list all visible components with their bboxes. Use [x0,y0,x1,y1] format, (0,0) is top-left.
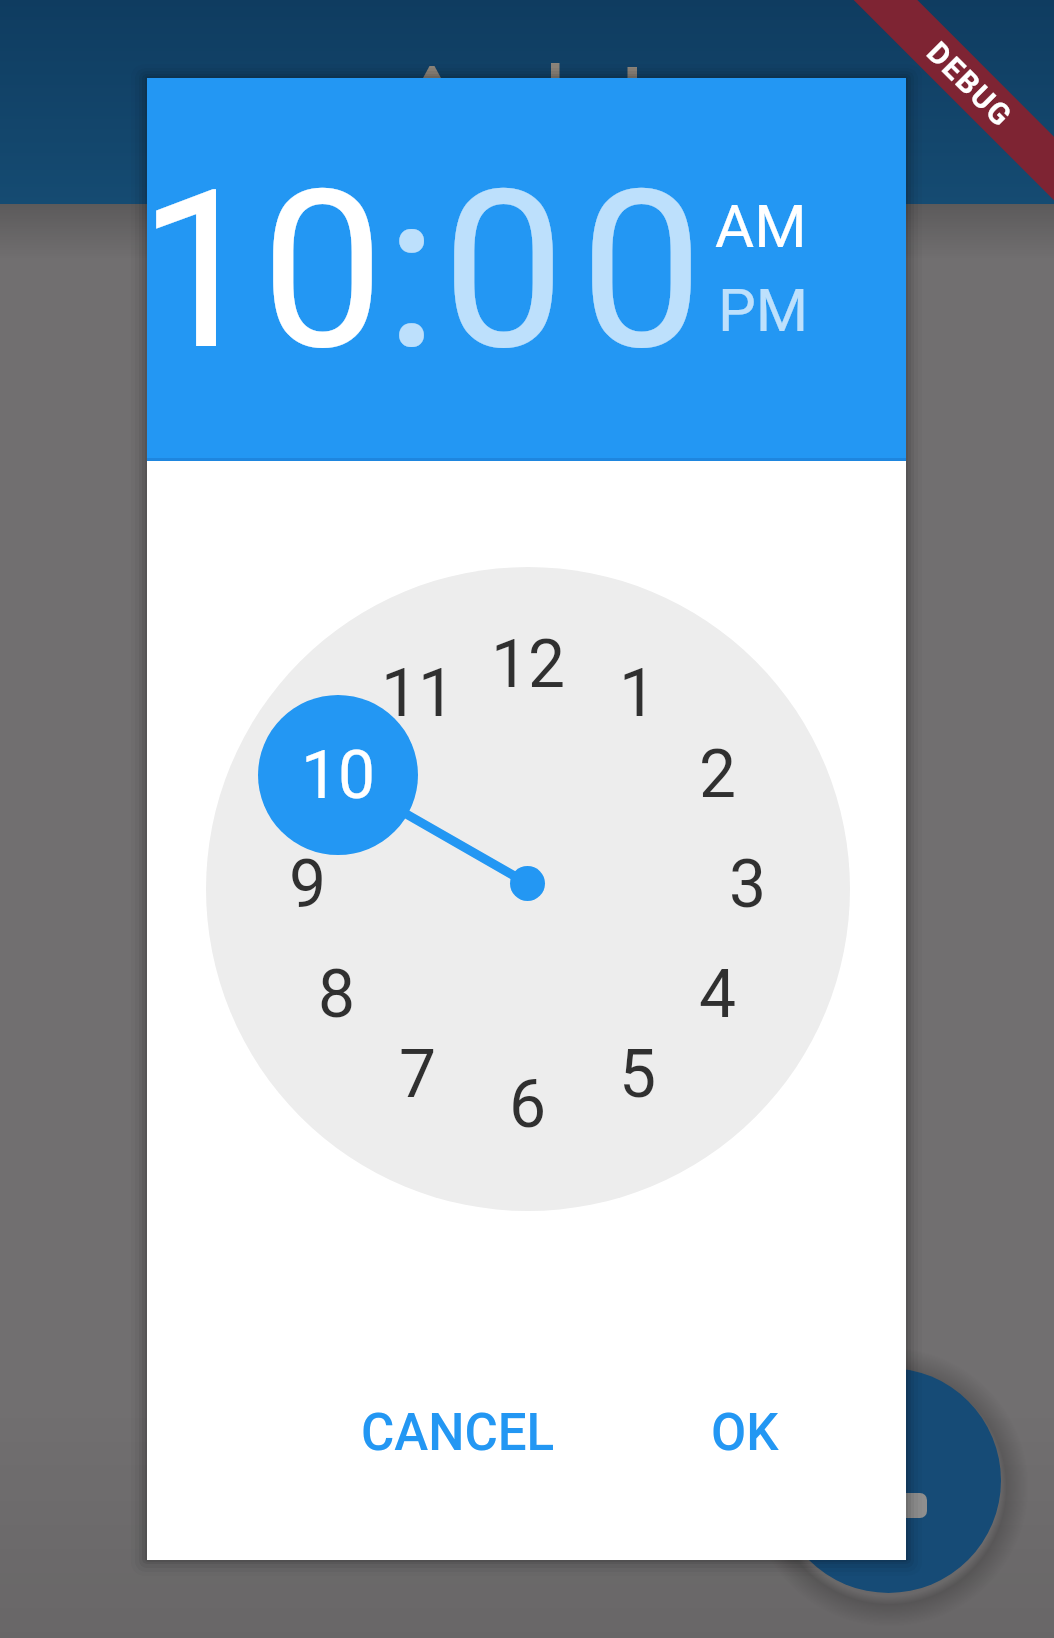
staticText: 5 [619,1036,657,1113]
staticText: OK [711,1403,779,1463]
staticText: 3 [729,846,767,923]
button[interactable]: 12 [478,614,578,714]
button[interactable]: 3 [698,834,798,934]
staticText: 6 [509,1066,547,1143]
staticText: 10 [138,143,385,400]
button[interactable]: 5 [588,1024,688,1124]
staticText: 12 [491,626,566,703]
staticText: CANCEL [361,1403,555,1463]
staticText: 10 [301,737,376,814]
staticText: 9 [289,846,327,923]
button[interactable]: OK [685,1388,805,1478]
button[interactable]: CANCEL [348,1388,568,1478]
staticText: 1 [619,655,657,732]
button[interactable]: 7 [368,1024,468,1124]
button[interactable]: 6 [478,1054,578,1154]
button[interactable]: 8 [287,944,387,1044]
staticText: DEBUG [920,35,1020,134]
staticText: 7 [399,1036,437,1113]
button[interactable] [692,178,822,258]
staticText: PM [718,275,809,345]
button[interactable] [692,262,822,342]
button[interactable] [776,1368,1001,1593]
staticText: 2 [699,736,737,813]
button[interactable]: 1 [588,643,688,743]
button[interactable]: DEBUG [841,0,1054,214]
button[interactable]: 10 [258,695,418,855]
button[interactable]: 2 [668,724,768,824]
button[interactable]: 11 [368,643,468,743]
staticText: : [385,143,439,400]
staticText: AM [715,191,807,261]
staticText: 00 [442,143,719,400]
button[interactable]: 9 [258,834,358,934]
staticText: 8 [318,956,356,1033]
staticText: 4 [699,956,737,1033]
button[interactable]: 4 [668,944,768,1044]
staticText: 11 [381,655,456,732]
